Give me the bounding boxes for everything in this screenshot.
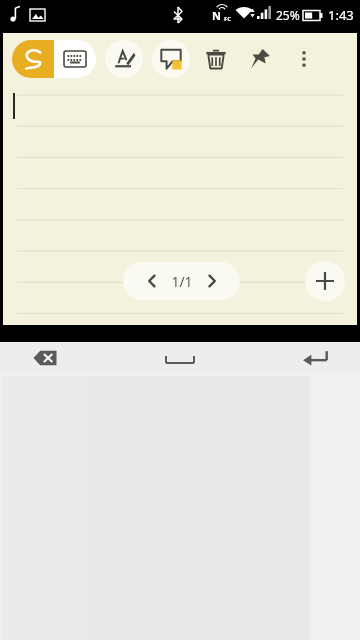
staticText: FC [224,15,232,23]
staticText: 25% [276,7,300,23]
staticText: N [212,8,221,23]
button[interactable]: More options [288,43,320,75]
staticText: 1:43 [328,6,354,24]
button[interactable]: Delete [200,43,232,75]
button[interactable]: Handwriting mode [12,40,54,78]
button[interactable]: Next page [199,268,225,294]
button[interactable]: Previous page [123,262,240,300]
button[interactable]: Pen settings [105,40,143,78]
staticText: 1/1 [165,272,199,291]
button[interactable]: Note background [152,40,190,78]
button[interactable]: Pin [244,43,276,75]
button[interactable]: Previous page [139,268,165,294]
button[interactable]: Keyboard mode [54,40,96,78]
button[interactable]: Backspace [0,342,90,374]
button[interactable]: Space [90,342,270,374]
button[interactable]: Add page [305,261,345,301]
button[interactable]: Enter [270,342,360,374]
